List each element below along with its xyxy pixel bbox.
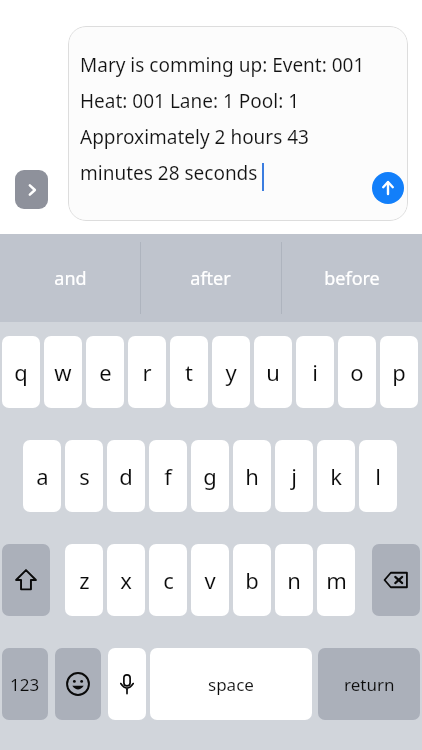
staticText: u [266, 357, 280, 387]
button[interactable]: return [318, 648, 420, 720]
button[interactable]: n [275, 544, 313, 616]
button[interactable]: Send [372, 172, 404, 204]
button[interactable]: e [86, 336, 124, 408]
button[interactable]: w [44, 336, 82, 408]
staticText: Mary is comming up: Event: 001 [80, 52, 365, 78]
staticText: e [99, 357, 112, 387]
staticText: minutes 28 seconds [80, 160, 258, 186]
button[interactable]: y [212, 336, 250, 408]
button[interactable]: z [65, 544, 103, 616]
staticText: g [203, 461, 217, 491]
staticText: h [245, 461, 259, 491]
button[interactable]: r [128, 336, 166, 408]
staticText: m [326, 565, 347, 595]
button[interactable]: Dictate [108, 648, 146, 720]
staticText: o [350, 357, 364, 387]
button[interactable]: 123 [2, 648, 48, 720]
button[interactable]: k [317, 440, 355, 512]
button[interactable]: before [281, 234, 422, 322]
staticText: and [54, 266, 87, 291]
button[interactable]: p [380, 336, 418, 408]
staticText: w [54, 357, 72, 387]
staticText: k [330, 461, 342, 491]
staticText: d [119, 461, 133, 491]
staticText: i [312, 357, 318, 387]
button[interactable]: Backspace [372, 544, 420, 616]
button[interactable]: o [338, 336, 376, 408]
button[interactable]: j [275, 440, 313, 512]
button[interactable]: after [140, 234, 281, 322]
staticText: p [392, 357, 406, 387]
staticText: Heat: 001 Lane: 1 Pool: 1 [80, 88, 300, 114]
button[interactable]: d [107, 440, 145, 512]
staticText: b [245, 565, 259, 595]
button[interactable]: Emoji [55, 648, 101, 720]
button[interactable]: q [2, 336, 40, 408]
staticText: s [79, 461, 90, 491]
staticText: space [208, 673, 254, 696]
button[interactable]: g [191, 440, 229, 512]
staticText: r [142, 357, 152, 387]
staticText: l [375, 461, 381, 491]
button[interactable]: t [170, 336, 208, 408]
staticText: x [120, 565, 132, 595]
button[interactable]: and [0, 234, 140, 322]
staticText: n [287, 565, 301, 595]
button[interactable]: u [254, 336, 292, 408]
button[interactable]: s [65, 440, 103, 512]
button[interactable]: Show more options [15, 170, 48, 209]
staticText: y [225, 357, 237, 387]
button[interactable]: c [149, 544, 187, 616]
button[interactable] [68, 26, 408, 221]
staticText: return [344, 673, 395, 696]
button[interactable]: m [317, 544, 355, 616]
button[interactable]: Shift [2, 544, 50, 616]
button[interactable]: i [296, 336, 334, 408]
button[interactable]: b [233, 544, 271, 616]
button[interactable]: x [107, 544, 145, 616]
staticText: z [79, 565, 90, 595]
button[interactable]: v [191, 544, 229, 616]
staticText: q [14, 357, 28, 387]
button[interactable]: f [149, 440, 187, 512]
staticText: t [185, 357, 193, 387]
staticText: a [36, 461, 49, 491]
staticText: after [190, 266, 231, 291]
button[interactable]: a [23, 440, 61, 512]
staticText: before [324, 266, 380, 291]
button[interactable]: l [359, 440, 397, 512]
staticText: f [164, 461, 172, 491]
button[interactable]: space [150, 648, 312, 720]
staticText: v [204, 565, 216, 595]
staticText: j [291, 461, 297, 491]
staticText: 123 [10, 673, 40, 696]
staticText: Approximately 2 hours 43 [80, 124, 309, 150]
staticText: c [163, 565, 174, 595]
button[interactable]: h [233, 440, 271, 512]
